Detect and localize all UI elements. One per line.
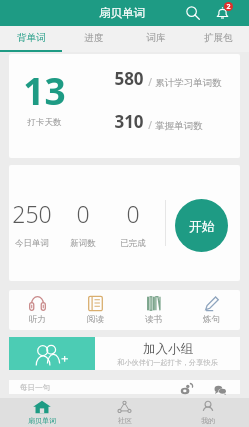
staticText: 310 [114, 110, 144, 133]
staticText: 听力 [29, 314, 46, 325]
button[interactable]: 社区 [83, 398, 166, 427]
staticText: 我的 [201, 416, 215, 425]
staticText: 13 [14, 65, 75, 115]
button[interactable]: 每日一句 [9, 380, 240, 394]
staticText: 今日单词 [15, 238, 49, 249]
staticText: 扇贝单词 [99, 6, 145, 20]
staticText: / [148, 118, 152, 132]
button[interactable]: 背单词 [0, 26, 63, 52]
staticText: 社区 [118, 416, 132, 425]
button[interactable]: 词库 [125, 26, 187, 52]
button[interactable]: 阅读 [66, 290, 124, 330]
button[interactable]: 炼句 [182, 290, 240, 330]
button[interactable]: 我的 [166, 398, 249, 427]
staticText: 开始 [189, 218, 215, 234]
staticText: 已完成 [120, 238, 146, 249]
staticText: 580 [114, 67, 144, 90]
staticText: 和小伙伴们一起打卡，分享快乐 [117, 358, 218, 367]
staticText: 0 [76, 198, 90, 229]
button[interactable]: 开始 [175, 199, 228, 252]
button[interactable]: Notifications [211, 2, 233, 24]
button[interactable]: Share to WeChat [214, 383, 227, 396]
staticText: 250 [12, 198, 52, 229]
staticText: 2 [226, 2, 231, 11]
button[interactable]: 进度 [63, 26, 125, 52]
button[interactable]: 听力 [9, 290, 66, 330]
staticText: / [148, 75, 152, 89]
staticText: 掌握单词数 [155, 120, 203, 132]
staticText: 打卡天数 [14, 117, 75, 128]
button[interactable]: 13 [9, 54, 240, 158]
staticText: 读书 [145, 314, 162, 325]
button[interactable]: Search [182, 2, 204, 24]
staticText: 0 [126, 198, 140, 229]
button[interactable]: Add group [9, 337, 95, 370]
staticText: 炼句 [203, 314, 220, 325]
button[interactable]: 扇贝单词 [0, 398, 83, 427]
staticText: 扇贝单词 [28, 416, 56, 425]
button[interactable]: Share to Weibo [180, 383, 193, 396]
staticText: 进度 [84, 32, 104, 44]
button[interactable]: 加入小组 [95, 337, 240, 370]
staticText: 新词数 [70, 238, 96, 249]
staticText: 扩展包 [204, 32, 233, 44]
staticText: 背单词 [17, 32, 46, 44]
staticText: 加入小组 [143, 341, 193, 357]
button[interactable]: 扩展包 [187, 26, 249, 52]
staticText: 词库 [146, 32, 166, 44]
staticText: 阅读 [87, 314, 104, 325]
button[interactable]: 读书 [124, 290, 182, 330]
staticText: 每日一句 [20, 383, 50, 392]
staticText: 累计学习单词数 [155, 77, 222, 89]
